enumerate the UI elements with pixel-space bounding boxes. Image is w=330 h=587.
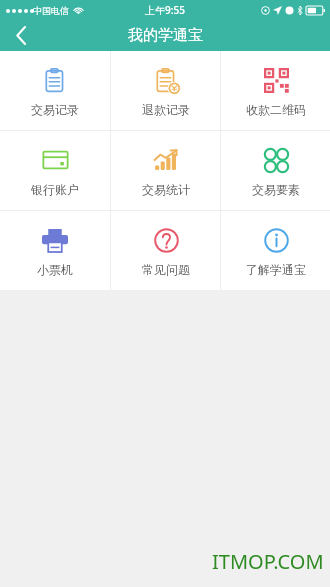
staticText: 常见问题 xyxy=(142,262,190,277)
button[interactable]: 交易记录 xyxy=(0,51,110,130)
staticText: 小票机 xyxy=(37,262,73,277)
staticText: ITMOP.COM xyxy=(212,548,324,575)
staticText: 交易要素 xyxy=(252,182,300,197)
button[interactable]: 交易要素 xyxy=(221,131,330,210)
staticText: 交易记录 xyxy=(31,102,79,117)
button[interactable]: 了解学通宝 xyxy=(221,211,330,290)
button[interactable]: 常见问题 xyxy=(111,211,220,290)
staticText: 交易统计 xyxy=(142,182,190,197)
staticText: 收款二维码 xyxy=(246,102,306,117)
button[interactable]: 交易统计 xyxy=(111,131,220,210)
button[interactable]: 收款二维码 xyxy=(221,51,330,130)
staticText: 银行账户 xyxy=(31,182,79,197)
button[interactable]: Back xyxy=(0,20,42,51)
staticText: 上午9:55 xyxy=(145,3,185,17)
staticText: 中国电信 xyxy=(33,5,69,16)
staticText: 我的学通宝 xyxy=(128,26,203,45)
button[interactable]: 退款记录 xyxy=(111,51,220,130)
button[interactable]: 银行账户 xyxy=(0,131,110,210)
button[interactable]: 小票机 xyxy=(0,211,110,290)
staticText: 退款记录 xyxy=(142,102,190,117)
staticText: 了解学通宝 xyxy=(246,262,306,277)
